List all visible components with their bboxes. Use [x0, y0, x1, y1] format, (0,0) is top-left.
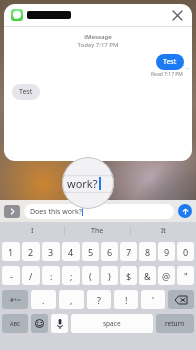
button[interactable]: return — [156, 314, 194, 333]
button[interactable]: Close — [4, 4, 192, 161]
staticText: The — [91, 226, 104, 236]
staticText: ABC — [10, 320, 21, 327]
staticText: It — [161, 226, 166, 236]
staticText: 6 — [107, 246, 113, 258]
button[interactable]: The — [65, 222, 130, 239]
button[interactable]: 8 — [139, 242, 156, 261]
staticText: return — [165, 319, 185, 328]
staticText: #+= — [10, 296, 21, 304]
button[interactable]: 5 — [82, 242, 99, 261]
button[interactable]: : — [42, 266, 60, 285]
staticText: & — [144, 270, 151, 282]
staticText: : — [50, 270, 53, 282]
button[interactable]: Test — [19, 87, 33, 97]
button[interactable]: - — [2, 266, 20, 285]
staticText: I — [31, 226, 34, 236]
staticText: , — [70, 294, 73, 306]
button[interactable]: I — [0, 222, 64, 239]
button[interactable]: / — [22, 266, 40, 285]
button[interactable]: 7 — [120, 242, 137, 261]
staticText: ! — [125, 294, 128, 306]
staticText: ? — [97, 294, 101, 306]
button[interactable]: 1 — [2, 242, 20, 261]
button[interactable]: Send — [178, 204, 192, 218]
staticText: Read 7:17 PM — [151, 71, 183, 78]
button[interactable]: 0 — [177, 242, 194, 261]
staticText: 1 — [8, 246, 14, 258]
staticText: 8 — [145, 246, 151, 258]
button[interactable]: Emoji — [31, 314, 48, 333]
button[interactable]: 6 — [101, 242, 118, 261]
staticText: 0 — [183, 246, 189, 258]
button[interactable]: ABC — [2, 314, 28, 333]
staticText: 2 — [28, 246, 34, 258]
button[interactable]: 9 — [158, 242, 175, 261]
staticText: space — [103, 319, 121, 328]
button[interactable]: @ — [158, 266, 175, 285]
staticText: 5 — [88, 246, 94, 258]
staticText: ) — [108, 270, 111, 282]
button[interactable]: 2 — [22, 242, 40, 261]
button[interactable]: , — [59, 290, 84, 309]
staticText: ; — [70, 270, 73, 282]
staticText: iMessage — [10, 33, 186, 41]
staticText: . — [42, 294, 45, 306]
button[interactable]: $ — [120, 266, 137, 285]
button[interactable]: 3 — [42, 242, 60, 261]
button[interactable]: ; — [62, 266, 80, 285]
staticText: work? — [67, 176, 98, 191]
staticText: Does this work? — [30, 207, 82, 217]
button[interactable]: ' — [141, 290, 165, 309]
button[interactable]: . — [31, 290, 56, 309]
button[interactable]: Delete — [168, 290, 194, 309]
button[interactable]: ) — [101, 266, 118, 285]
button[interactable]: ( — [82, 266, 99, 285]
button[interactable]: Close — [169, 7, 185, 23]
button[interactable]: #+= — [2, 290, 28, 309]
staticText: 3 — [48, 246, 54, 258]
button[interactable]: It — [131, 222, 196, 239]
staticText: / — [29, 270, 33, 282]
button[interactable]: ? — [87, 290, 111, 309]
staticText: ' — [152, 294, 155, 306]
staticText: - — [10, 270, 13, 282]
button[interactable]: & — [139, 266, 156, 285]
button[interactable]: Does this work? — [24, 204, 174, 219]
staticText: 9 — [164, 246, 170, 258]
button[interactable]: Test — [163, 57, 177, 67]
staticText: Test — [19, 87, 33, 97]
button[interactable]: Expand apps — [4, 205, 20, 218]
staticText: Test — [163, 57, 177, 67]
button[interactable]: space — [71, 314, 153, 333]
staticText: 4 — [68, 246, 74, 258]
button[interactable]: ! — [114, 290, 138, 309]
staticText: " — [184, 270, 188, 282]
staticText: $ — [126, 270, 132, 282]
staticText: 7 — [126, 246, 132, 258]
staticText: Today 7:17 PM — [10, 41, 186, 49]
button[interactable]: Dictate — [51, 314, 68, 333]
staticText: @ — [162, 270, 171, 282]
button[interactable]: " — [177, 266, 194, 285]
button[interactable]: 4 — [62, 242, 80, 261]
staticText: ( — [89, 270, 92, 282]
